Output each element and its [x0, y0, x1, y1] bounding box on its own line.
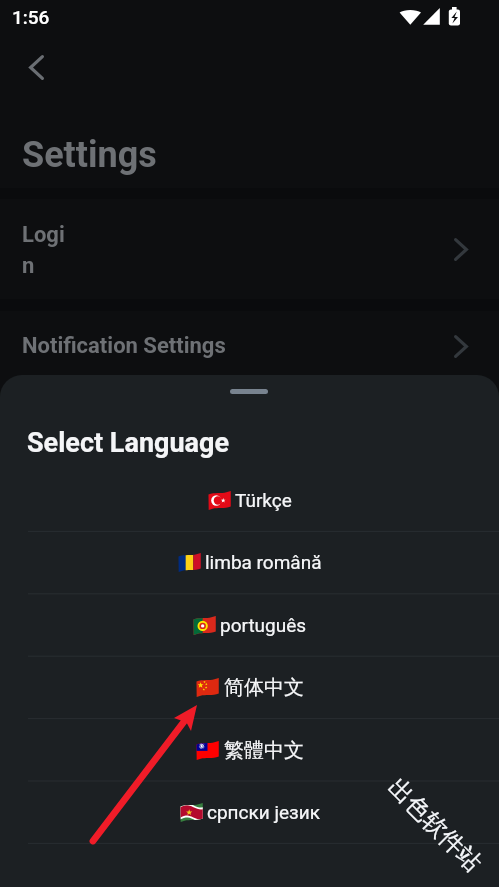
button[interactable]: português — [0, 594, 499, 656]
staticText: 繁體中文 — [224, 738, 304, 763]
button[interactable]: Login — [0, 205, 499, 297]
button[interactable]: Notification Settings — [0, 312, 499, 378]
staticText: português — [220, 614, 307, 636]
staticText: Notification Settings — [22, 333, 226, 359]
staticText: српски језик — [207, 801, 320, 823]
button[interactable]: Back — [14, 45, 58, 89]
button[interactable]: Türkçe — [0, 469, 499, 531]
staticText: Select Language — [27, 427, 230, 459]
staticText: 1:56 — [12, 6, 50, 28]
staticText: 出色软件站 — [382, 772, 488, 878]
staticText: limba română — [205, 551, 322, 573]
staticText: Settings — [22, 134, 157, 176]
staticText: Login — [22, 222, 68, 278]
staticText: 简体中文 — [224, 675, 304, 700]
button[interactable]: српски језик — [0, 781, 499, 843]
button[interactable]: 繁體中文 — [0, 719, 499, 781]
button[interactable]: limba română — [0, 531, 499, 593]
button[interactable]: 简体中文 — [0, 656, 499, 718]
staticText: Türkçe — [235, 489, 292, 511]
